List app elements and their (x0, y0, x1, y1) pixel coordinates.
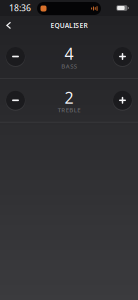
button[interactable]: Decrease TREBLE (0, 79, 31, 122)
staticText: 18:36 (9, 2, 31, 14)
button[interactable]: Increase BASS (107, 35, 138, 78)
button[interactable]: Decrease BASS (0, 35, 31, 78)
staticText: 2 (64, 87, 73, 108)
staticText: TREBLE (58, 106, 80, 114)
staticText: 4 (64, 43, 73, 65)
button[interactable]: Increase TREBLE (107, 79, 138, 122)
staticText: EQUALISER (50, 21, 88, 30)
button[interactable]: Back (0, 17, 18, 33)
staticText: BASS (61, 62, 77, 70)
